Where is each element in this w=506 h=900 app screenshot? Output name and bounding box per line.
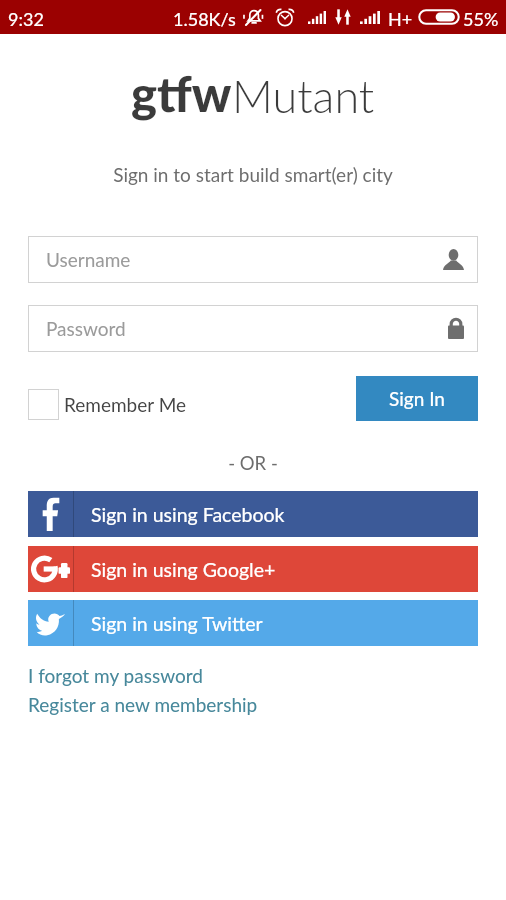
staticText: - OR - [0,452,506,474]
button[interactable]: Sign In [356,376,478,421]
button[interactable]: I forgot my password [28,664,203,687]
button[interactable]: Sign in using Facebook [28,491,478,537]
button[interactable]: Remember Me [28,389,187,420]
button[interactable]: Register a new membership [28,693,258,716]
staticText: Sign in to start build smart(er) city [0,163,506,186]
staticText: 1.58K/s [173,8,236,30]
staticText: Mutant [232,69,375,123]
staticText: I forgot my password [28,664,203,687]
staticText: Sign In [389,387,445,410]
staticText: H+ [388,8,413,30]
staticText: 55% [463,8,499,30]
staticText: Password [46,317,126,340]
staticText: Sign in using Twitter [91,612,263,635]
other: Username [443,249,464,270]
other: Password [448,318,464,339]
staticText: 9:32 [8,8,44,30]
staticText: Sign in using Google+ [91,558,276,581]
button[interactable]: Sign in using Google+ [28,546,478,592]
button[interactable]: Password [28,305,478,352]
button[interactable]: Username [28,236,478,283]
staticText: Remember Me [64,393,187,416]
staticText: gtfw [131,64,232,123]
staticText: Register a new membership [28,693,258,716]
staticText: Sign in using Facebook [91,503,285,526]
staticText: Username [46,248,131,271]
button[interactable]: Sign in using Twitter [28,600,478,646]
